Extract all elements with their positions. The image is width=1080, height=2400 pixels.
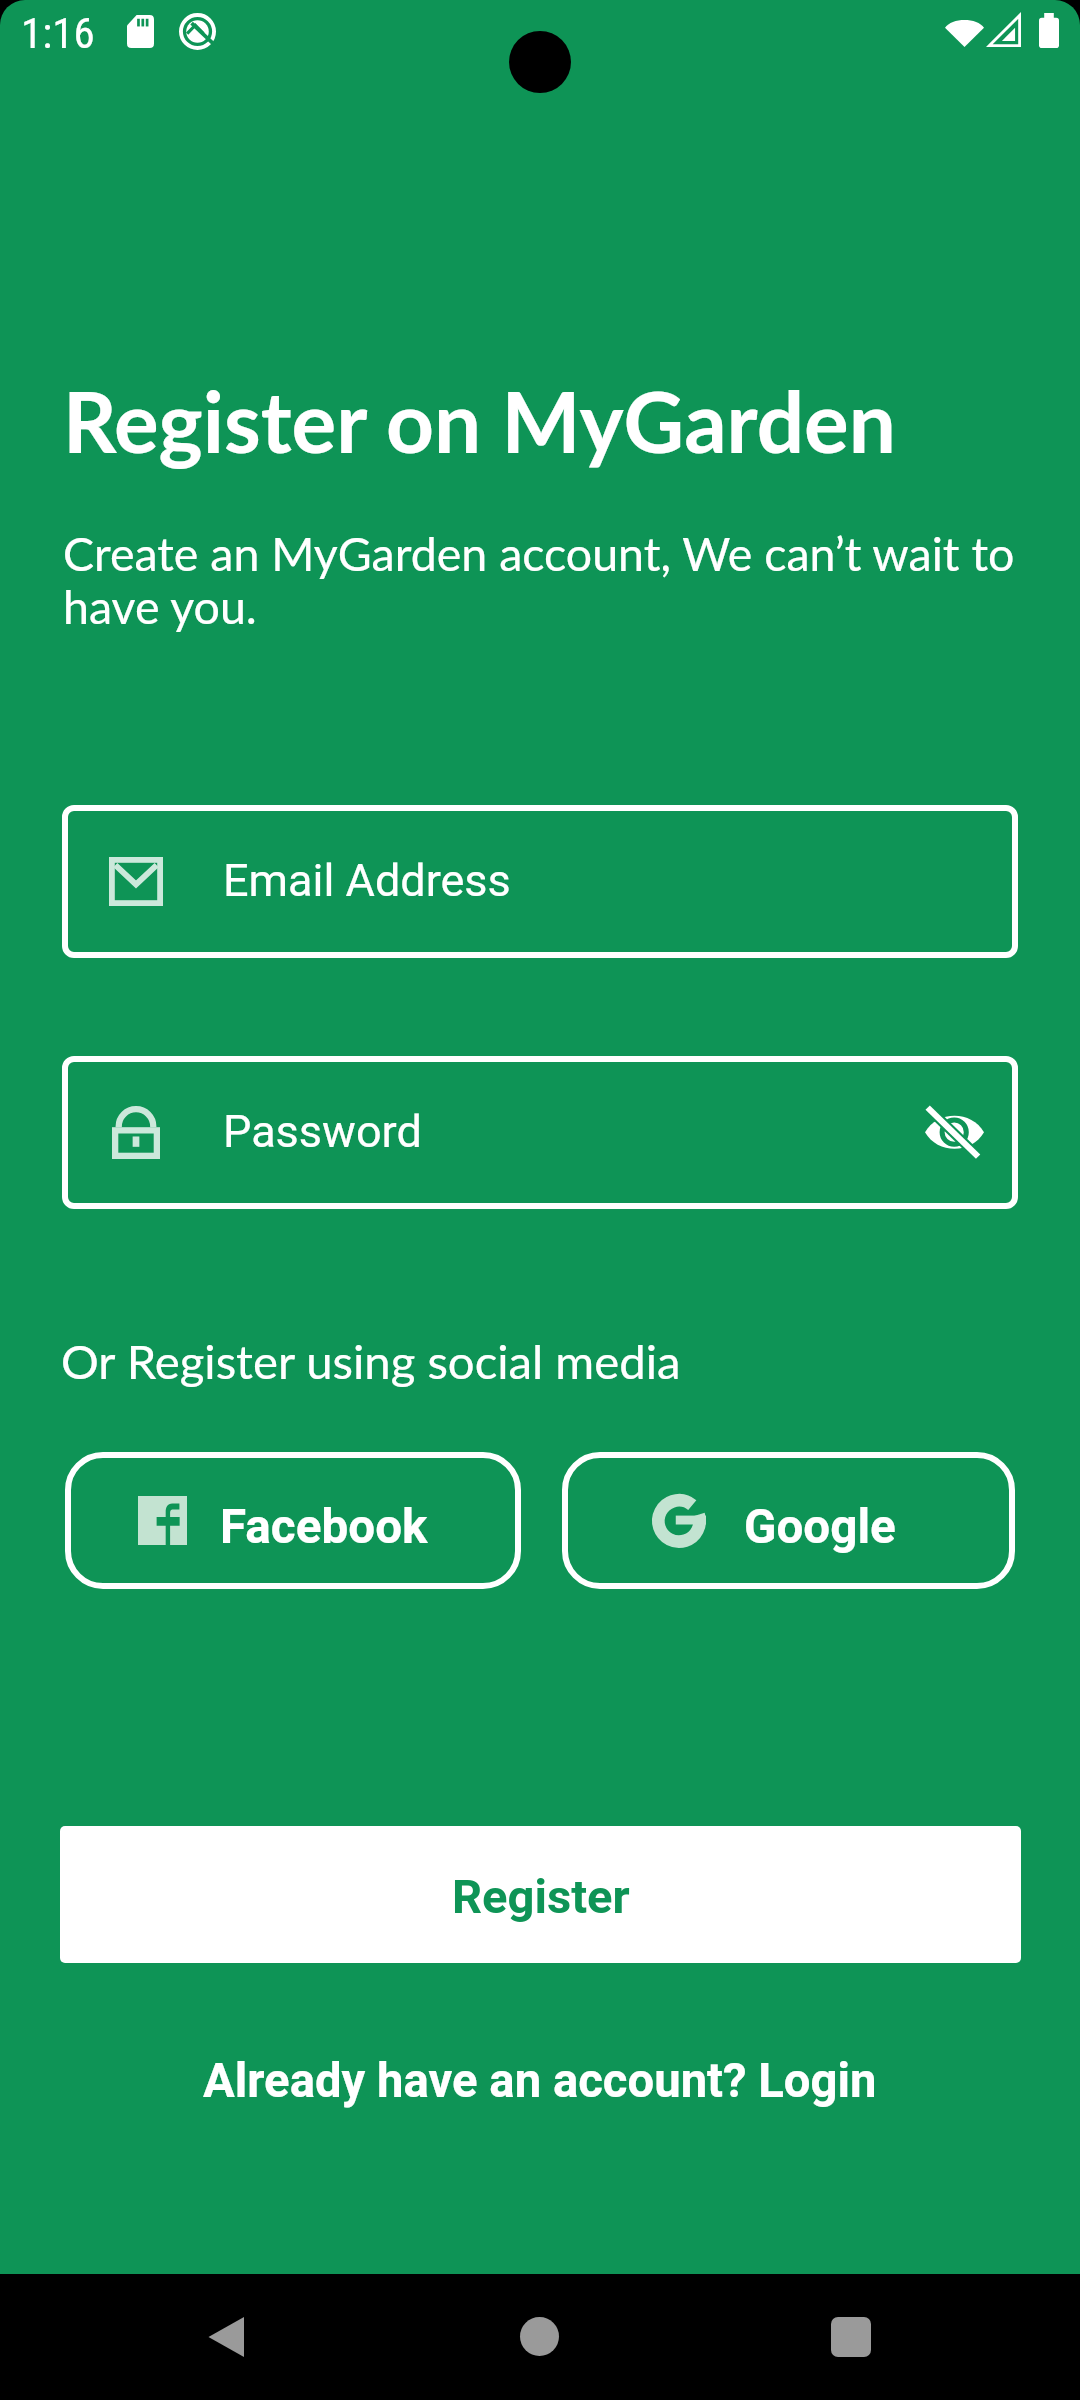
staticText: Register on MyGarden [63, 370, 896, 470]
staticText: Register [452, 1869, 630, 1924]
staticText: Password [223, 1105, 422, 1158]
button[interactable]: Facebook [65, 1452, 521, 1589]
button[interactable]: Register [60, 1826, 1021, 1963]
button[interactable]: Recents [775, 2274, 927, 2400]
other: Show password [925, 1106, 984, 1161]
button[interactable]: Email Address [62, 805, 1018, 958]
staticText: Already have an account? Login [203, 2053, 877, 2108]
button[interactable]: Password [62, 1056, 1018, 1209]
staticText: Facebook [220, 1499, 428, 1555]
staticText: Google [744, 1499, 896, 1555]
button[interactable]: Google [562, 1452, 1015, 1589]
staticText: 1:16 [21, 8, 95, 58]
button[interactable]: Already have an account? Login [0, 2040, 1080, 2120]
staticText: Email Address [223, 854, 511, 907]
button[interactable]: Home [464, 2274, 616, 2400]
button[interactable]: Back [150, 2274, 302, 2400]
staticText: Create an MyGarden account, We can’t wai… [63, 525, 1021, 634]
staticText: Or Register using social media [61, 1332, 681, 1389]
